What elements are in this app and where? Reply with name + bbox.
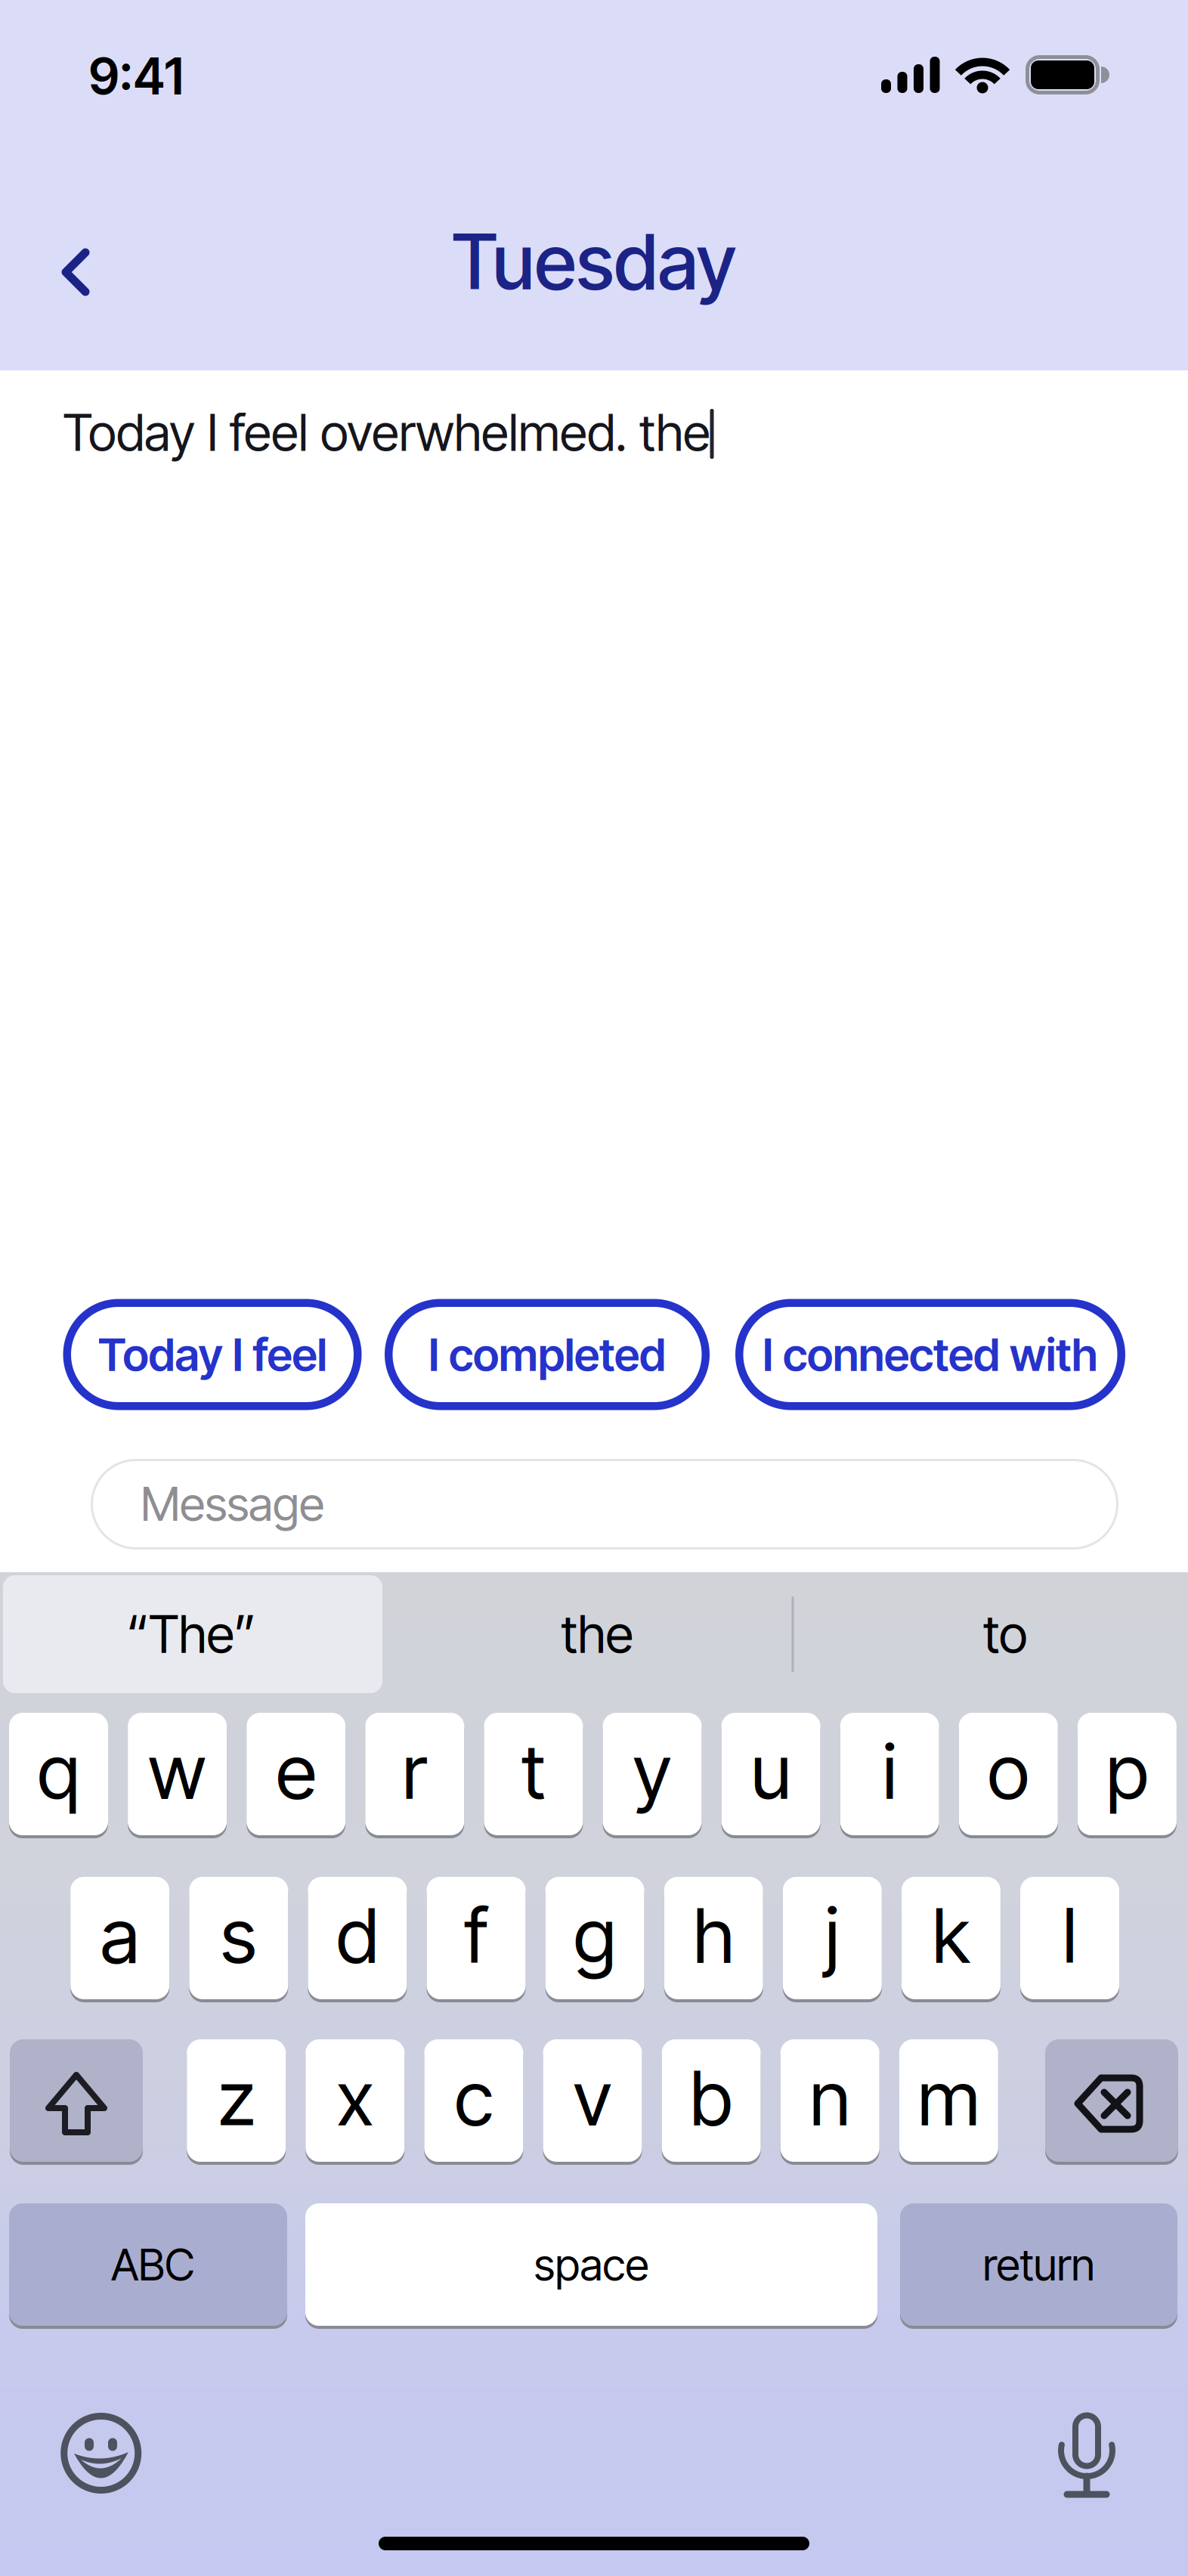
staticText: b — [690, 2052, 732, 2143]
staticText: j — [825, 1889, 839, 1981]
staticText: I connected with — [763, 1327, 1098, 1382]
staticText: m — [918, 2052, 980, 2143]
staticText: Today I feel overwhelmed. the — [63, 402, 710, 463]
staticText: to — [983, 1603, 1027, 1665]
staticText: z — [218, 2052, 255, 2143]
staticText: i — [882, 1725, 897, 1817]
staticText: Today I feel — [98, 1327, 327, 1382]
staticText: y — [633, 1725, 671, 1817]
staticText: k — [932, 1889, 970, 1981]
staticText: ABC — [111, 2238, 194, 2291]
staticText: 9:41 — [89, 46, 183, 107]
staticText: t — [521, 1725, 546, 1817]
staticText: p — [1106, 1725, 1148, 1817]
staticText: x — [337, 2052, 374, 2143]
staticText: space — [534, 2238, 649, 2291]
staticText: Message — [141, 1475, 324, 1532]
staticText: return — [983, 2238, 1095, 2291]
staticText: the — [561, 1603, 633, 1665]
staticText: a — [100, 1889, 140, 1981]
staticText: s — [221, 1889, 257, 1981]
staticText: I completed — [428, 1327, 666, 1382]
staticText: Tuesday — [452, 215, 736, 308]
staticText: g — [574, 1889, 616, 1981]
staticText: d — [336, 1889, 379, 1981]
staticText: l — [1063, 1889, 1077, 1981]
staticText: f — [464, 1889, 488, 1981]
staticText: h — [693, 1889, 734, 1981]
staticText: e — [276, 1725, 316, 1817]
staticText: r — [402, 1725, 427, 1817]
staticText: q — [37, 1725, 80, 1817]
staticText: w — [148, 1725, 206, 1817]
staticText: v — [573, 2052, 612, 2143]
staticText: n — [810, 2052, 850, 2143]
staticText: c — [454, 2052, 493, 2143]
staticText: “The” — [127, 1603, 256, 1665]
staticText: u — [751, 1725, 791, 1817]
staticText: o — [988, 1725, 1029, 1817]
